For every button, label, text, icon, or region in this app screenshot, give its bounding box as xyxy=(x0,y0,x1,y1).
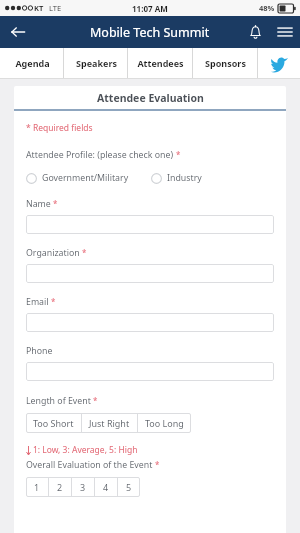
staticText: Length of Event xyxy=(26,395,91,407)
staticText: LTE xyxy=(49,3,62,13)
button[interactable]: Menu xyxy=(270,17,300,47)
button[interactable] xyxy=(26,362,274,381)
staticText: 4 xyxy=(103,481,109,493)
button[interactable]: 2 xyxy=(49,477,71,497)
staticText: 5 xyxy=(126,481,132,493)
staticText: 3 xyxy=(80,481,86,493)
staticText: 1 xyxy=(34,481,40,493)
button[interactable]: Speakers xyxy=(64,48,128,78)
staticText: * xyxy=(82,247,87,258)
staticText: Mobile Tech Summit xyxy=(90,24,210,41)
staticText: Industry xyxy=(167,172,202,184)
staticText: 1: Low, 3: Average, 5: High xyxy=(33,444,138,456)
staticText: Agenda xyxy=(15,57,50,69)
staticText: KT xyxy=(34,3,44,13)
button[interactable]: Industry xyxy=(151,172,202,184)
button[interactable] xyxy=(26,264,274,283)
staticText: * xyxy=(51,296,56,307)
staticText: Government/Military xyxy=(42,172,129,184)
staticText: * xyxy=(53,198,58,209)
staticText: Too Short xyxy=(33,417,74,429)
staticText: 11:07 AM xyxy=(132,3,168,14)
staticText: Attendees xyxy=(137,57,184,69)
button[interactable]: Sponsors xyxy=(193,48,258,78)
button[interactable]: 3 xyxy=(72,477,94,497)
staticText: Too Long xyxy=(145,417,184,429)
button[interactable]: Twitter xyxy=(258,48,300,78)
staticText: * Required fields xyxy=(26,122,93,134)
button[interactable]: 4 xyxy=(95,477,117,497)
button[interactable]: Just Right xyxy=(82,413,137,433)
staticText: Organization xyxy=(26,247,80,259)
staticText: Email xyxy=(26,296,49,308)
staticText: Attendee Profile: (please check one) xyxy=(26,149,174,161)
staticText: Sponsors xyxy=(205,57,246,69)
button[interactable]: Agenda xyxy=(0,48,64,78)
staticText: * xyxy=(176,149,181,160)
button[interactable]: 5 xyxy=(118,477,140,497)
staticText: 48% xyxy=(259,3,275,13)
staticText: Just Right xyxy=(89,417,130,429)
button[interactable]: Attendees xyxy=(128,48,193,78)
button[interactable]: Notifications xyxy=(240,17,270,47)
staticText: Attendee Evaluation xyxy=(97,91,204,105)
staticText: * xyxy=(155,459,160,470)
button[interactable]: Too Long xyxy=(138,413,191,433)
button[interactable]: Too Short xyxy=(26,413,81,433)
button[interactable]: Back xyxy=(0,16,36,48)
staticText: 2 xyxy=(57,481,63,493)
button[interactable] xyxy=(26,215,274,234)
button[interactable]: 1 xyxy=(26,477,48,497)
staticText: Phone xyxy=(26,345,53,357)
staticText: Speakers xyxy=(76,57,117,69)
staticText: Name xyxy=(26,198,51,210)
button[interactable] xyxy=(26,313,274,332)
staticText: * xyxy=(93,395,98,406)
staticText: Overall Evaluation of the Event xyxy=(26,459,153,471)
button[interactable]: Government/Military xyxy=(26,172,129,184)
